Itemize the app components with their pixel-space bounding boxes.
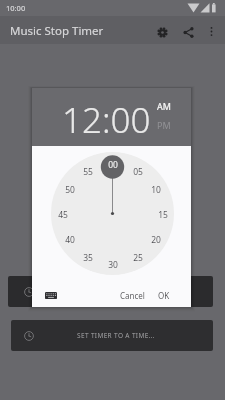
button[interactable] — [8, 276, 213, 307]
staticText: SET TIMER TO A TIME... — [77, 331, 155, 340]
button[interactable]: 12:00 — [62, 96, 151, 144]
button[interactable]: Settings — [151, 21, 174, 44]
staticText: 50 — [65, 184, 75, 196]
staticText: 35 — [83, 252, 93, 264]
staticText: 10:00 — [6, 3, 26, 13]
staticText: 05 — [133, 166, 143, 178]
staticText: Music Stop Timer — [10, 23, 104, 39]
staticText: PM — [157, 119, 171, 131]
staticText: 25 — [133, 252, 143, 264]
button[interactable]: OK — [155, 288, 173, 303]
staticText: 45 — [58, 209, 68, 221]
button[interactable]: More options — [201, 21, 222, 42]
staticText: AM — [157, 100, 171, 112]
staticText: 15 — [158, 209, 168, 221]
staticText: 00 — [108, 159, 118, 171]
staticText: 10 — [151, 184, 161, 196]
button[interactable]: Switch to keyboard input — [42, 286, 60, 304]
staticText: Cancel — [120, 290, 145, 301]
staticText: 40 — [65, 234, 75, 246]
button[interactable]: AM — [157, 100, 171, 112]
button[interactable]: Share — [177, 21, 200, 44]
button[interactable]: PM — [157, 119, 171, 131]
button[interactable]: Cancel — [117, 288, 148, 303]
staticText: 55 — [83, 166, 93, 178]
staticText: OK — [158, 290, 170, 301]
staticText: 30 — [108, 259, 118, 271]
staticText: 20 — [151, 234, 161, 246]
button[interactable]: SET TIMER TO A TIME... — [11, 320, 213, 351]
